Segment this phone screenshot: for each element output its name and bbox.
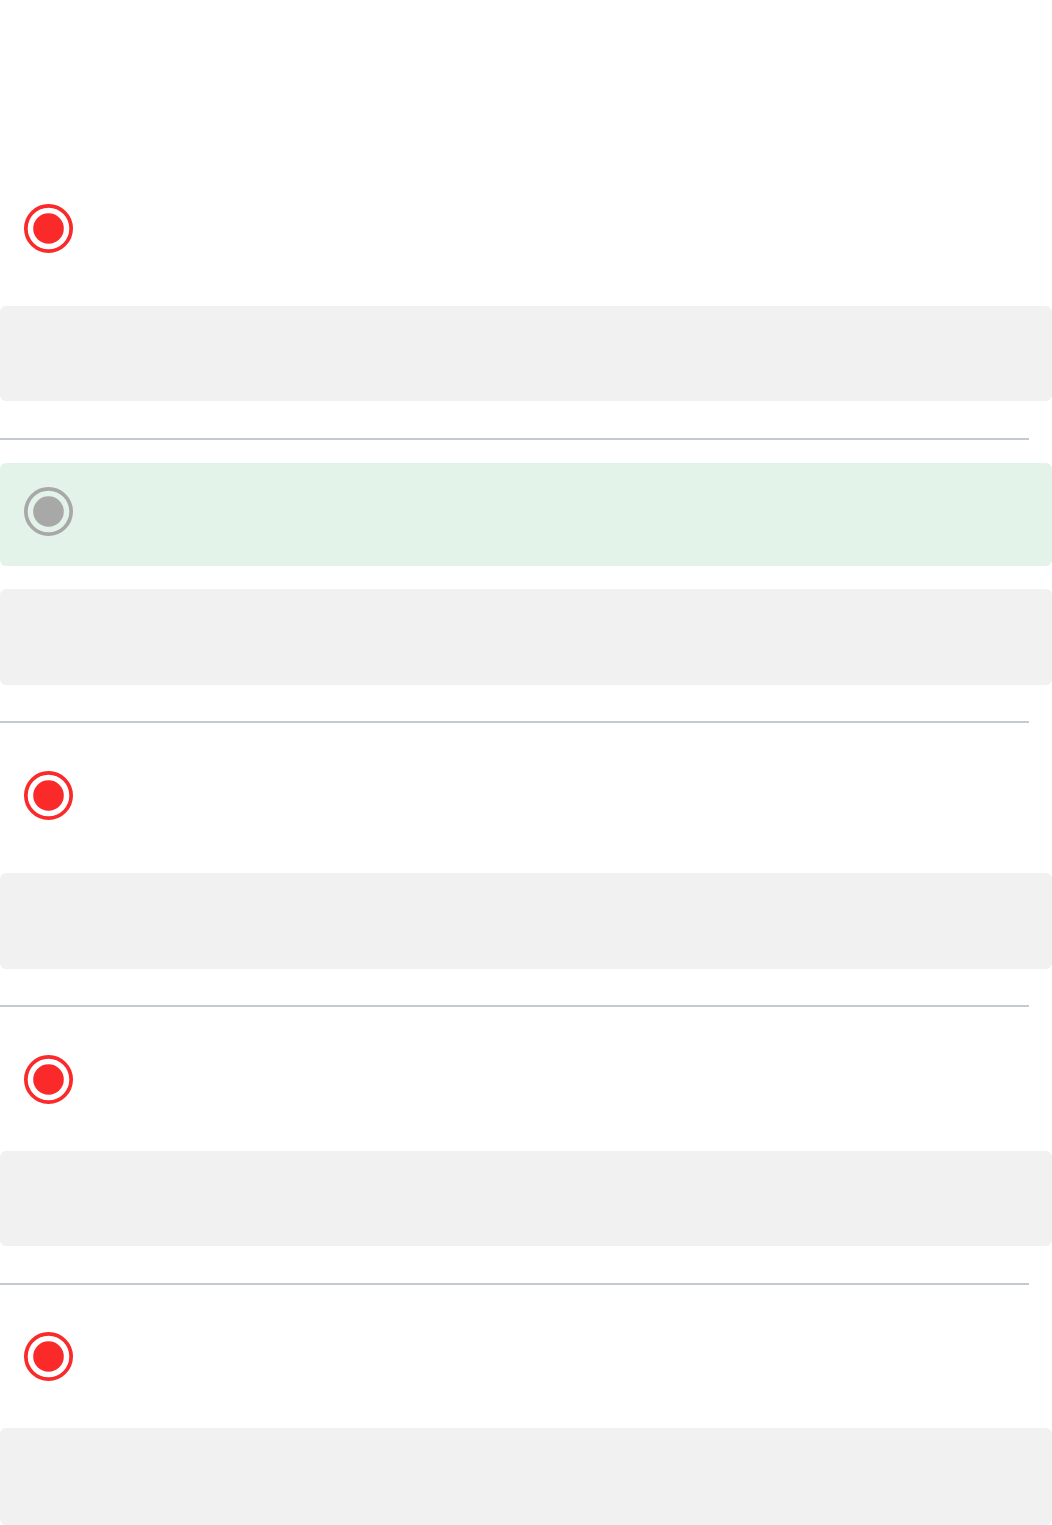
button[interactable]: Option five (0, 1332, 1052, 1381)
button[interactable]: Option two, selected row (0, 463, 1052, 566)
button[interactable]: Option three (0, 771, 1052, 820)
button[interactable]: Option one (0, 204, 1052, 253)
button[interactable]: Option four (0, 1055, 1052, 1104)
button[interactable]: Option two (0, 487, 1052, 536)
